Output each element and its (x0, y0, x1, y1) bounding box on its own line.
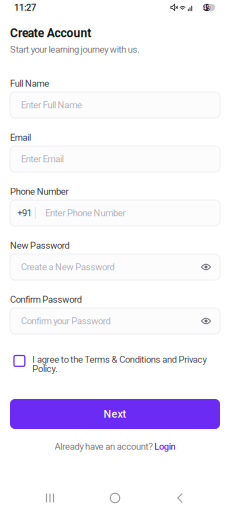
staticText: I agree to the Terms & Conditions and Pr… (32, 354, 206, 365)
staticText: Create Account (10, 26, 91, 40)
button[interactable]: Recent apps (35, 487, 65, 509)
staticText: +91 (17, 207, 32, 218)
staticText: Enter Email (21, 153, 64, 164)
button[interactable]: Enter Email (10, 146, 220, 172)
button[interactable]: Next (0, 399, 230, 429)
staticText: Enter Phone Number (45, 207, 126, 218)
staticText: New Password (10, 240, 70, 251)
staticText: Create a New Password (21, 261, 115, 272)
staticText: 49 (203, 4, 211, 11)
button[interactable]: Show password (194, 254, 218, 280)
staticText: Phone Number (10, 186, 69, 197)
staticText: Confirm your Password (21, 315, 111, 326)
staticText: Email (10, 132, 31, 143)
button[interactable]: Show password (194, 308, 218, 334)
button[interactable]: Login (154, 441, 175, 452)
button[interactable]: I agree to the Terms & Conditions and Pr… (0, 354, 230, 378)
staticText: Already have an account? (54, 441, 154, 452)
staticText: 11:27 (14, 2, 36, 13)
staticText: Start your learning journey with us. (10, 44, 139, 55)
staticText: Policy. (32, 363, 57, 374)
staticText: Full Name (10, 78, 49, 89)
button[interactable]: Home (100, 487, 130, 509)
staticText: Confirm Password (10, 294, 82, 305)
staticText: Login (154, 441, 175, 452)
staticText: Enter Full Name (21, 99, 82, 110)
staticText: Next (103, 408, 126, 420)
button[interactable]: Back (165, 487, 195, 509)
button[interactable]: Enter Full Name (10, 92, 220, 118)
